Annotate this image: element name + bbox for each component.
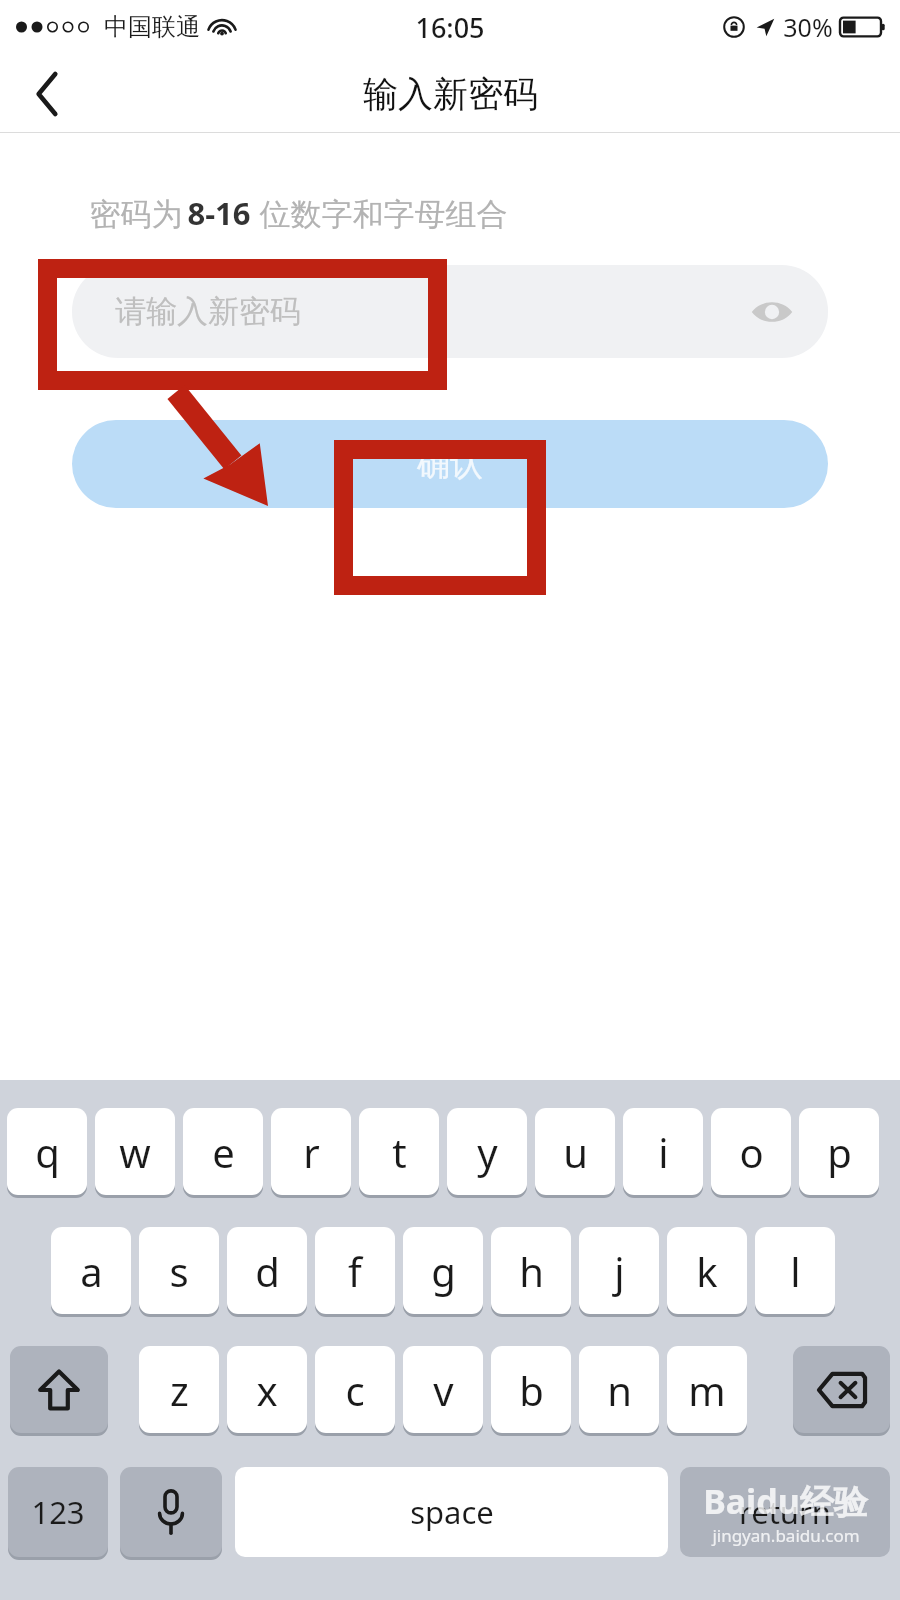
staticText: z bbox=[170, 1363, 189, 1417]
button[interactable]: d bbox=[227, 1227, 307, 1314]
staticText: x bbox=[256, 1363, 278, 1417]
button[interactable]: w bbox=[95, 1108, 175, 1195]
staticText: space bbox=[410, 1491, 494, 1533]
staticText: 位数字和字母组合 bbox=[251, 192, 508, 234]
button[interactable]: a bbox=[51, 1227, 131, 1314]
staticText: 确认 bbox=[417, 443, 483, 485]
staticText: k bbox=[696, 1244, 718, 1298]
staticText: m bbox=[688, 1363, 726, 1417]
button[interactable]: Back bbox=[14, 60, 82, 128]
button[interactable]: Show password bbox=[742, 282, 802, 342]
button[interactable]: b bbox=[491, 1346, 571, 1433]
button[interactable]: s bbox=[139, 1227, 219, 1314]
button[interactable]: Voice input bbox=[120, 1467, 222, 1557]
button[interactable]: m bbox=[667, 1346, 747, 1433]
staticText: w bbox=[119, 1125, 151, 1179]
staticText: y bbox=[477, 1125, 498, 1179]
staticText: j bbox=[614, 1244, 625, 1298]
button[interactable]: 确认 bbox=[72, 420, 828, 508]
staticText: 16:05 bbox=[415, 9, 485, 46]
button[interactable]: i bbox=[623, 1108, 703, 1195]
button[interactable]: y bbox=[447, 1108, 527, 1195]
staticText: g bbox=[431, 1244, 456, 1298]
button[interactable]: Shift bbox=[10, 1346, 108, 1433]
staticText: p bbox=[827, 1125, 852, 1179]
button[interactable]: f bbox=[315, 1227, 395, 1314]
staticText: l bbox=[790, 1244, 801, 1298]
button[interactable]: u bbox=[535, 1108, 615, 1195]
staticText: 中国联通 bbox=[104, 12, 200, 42]
staticText: 123 bbox=[31, 1491, 85, 1533]
staticText: r bbox=[303, 1125, 320, 1179]
staticText: e bbox=[212, 1125, 235, 1179]
staticText: q bbox=[35, 1125, 60, 1179]
button[interactable]: Numbers bbox=[8, 1467, 108, 1557]
staticText: b bbox=[519, 1363, 544, 1417]
button[interactable]: k bbox=[667, 1227, 747, 1314]
staticText: t bbox=[392, 1125, 407, 1179]
button[interactable]: Backspace bbox=[793, 1346, 890, 1433]
staticText: 8-16 bbox=[187, 192, 251, 234]
button[interactable]: c bbox=[315, 1346, 395, 1433]
button[interactable]: p bbox=[799, 1108, 879, 1195]
staticText: Baidu经验 bbox=[703, 1478, 868, 1524]
button[interactable]: n bbox=[579, 1346, 659, 1433]
staticText: 30% bbox=[783, 10, 833, 44]
staticText: jingyan.baidu.com bbox=[712, 1524, 860, 1547]
button[interactable]: g bbox=[403, 1227, 483, 1314]
button[interactable]: t bbox=[359, 1108, 439, 1195]
button[interactable]: j bbox=[579, 1227, 659, 1314]
button[interactable]: h bbox=[491, 1227, 571, 1314]
staticText: a bbox=[80, 1244, 103, 1298]
button[interactable]: 请输入新密码 bbox=[72, 265, 828, 358]
staticText: 输入新密码 bbox=[363, 72, 538, 116]
staticText: d bbox=[255, 1244, 280, 1298]
button[interactable]: r bbox=[271, 1108, 351, 1195]
button[interactable]: z bbox=[139, 1346, 219, 1433]
button[interactable]: e bbox=[183, 1108, 263, 1195]
staticText: i bbox=[658, 1125, 669, 1179]
button[interactable]: space bbox=[235, 1467, 668, 1557]
button[interactable]: l bbox=[755, 1227, 835, 1314]
staticText: f bbox=[348, 1244, 362, 1298]
button[interactable]: o bbox=[711, 1108, 791, 1195]
staticText: u bbox=[563, 1125, 588, 1179]
staticText: return bbox=[739, 1491, 831, 1533]
staticText: c bbox=[345, 1363, 365, 1417]
button[interactable]: x bbox=[227, 1346, 307, 1433]
staticText: 密码为 bbox=[85, 192, 187, 234]
button[interactable]: return bbox=[680, 1467, 890, 1557]
staticText: v bbox=[433, 1363, 454, 1417]
staticText: s bbox=[169, 1244, 189, 1298]
staticText: 请输入新密码 bbox=[115, 292, 301, 331]
staticText: o bbox=[739, 1125, 764, 1179]
staticText: n bbox=[607, 1363, 632, 1417]
button[interactable]: q bbox=[7, 1108, 87, 1195]
staticText: h bbox=[519, 1244, 544, 1298]
button[interactable]: v bbox=[403, 1346, 483, 1433]
